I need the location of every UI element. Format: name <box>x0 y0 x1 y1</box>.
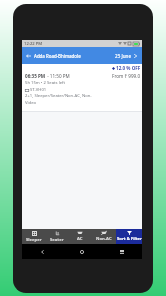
staticText: ST-VH01 <box>30 87 47 93</box>
staticText: 5h 15m • 2 Seats left <box>25 80 66 86</box>
staticText: 2+1, Sleeper/Seater/Non-AC, Non- Video <box>25 93 92 105</box>
button[interactable]: 12.0 % OFF <box>22 64 142 111</box>
staticText: 06:35 PM <box>25 73 46 79</box>
staticText: Non-AC <box>96 236 112 242</box>
staticText: 12.0 % OFF <box>116 65 141 71</box>
button[interactable]: Sleeper <box>22 229 45 244</box>
staticText: 12:22 PM <box>24 41 43 47</box>
button[interactable]: AC <box>68 229 92 244</box>
button[interactable]: Seater <box>45 229 68 244</box>
staticText: - 11:50 PM <box>46 73 70 79</box>
button[interactable]: Back <box>35 244 49 259</box>
staticText: AC <box>77 236 83 242</box>
staticText: Sleeper <box>26 237 42 243</box>
staticText: Sort & Filter <box>117 236 142 242</box>
button[interactable]: Recent apps <box>115 244 129 259</box>
button[interactable]: Home <box>75 244 89 259</box>
staticText: Seater <box>50 237 64 243</box>
button[interactable]: Sort & Filter <box>116 229 142 244</box>
button[interactable]: Non-AC <box>92 229 116 244</box>
staticText: 25 June <box>115 53 131 59</box>
staticText: From ₹ 999.0 <box>112 73 141 79</box>
button[interactable]: 25 June <box>114 51 138 61</box>
button[interactable]: Back <box>24 50 33 61</box>
staticText: Adda Road-Bhimadole <box>34 53 81 59</box>
